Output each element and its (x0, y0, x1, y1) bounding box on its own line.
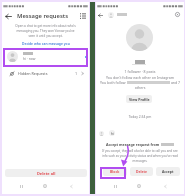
button[interactable]: Delete all (5, 169, 87, 177)
button[interactable]: Decide who can message you (2, 40, 89, 46)
staticText: If you accept, they will also be able to… (96, 149, 184, 163)
button[interactable]: Home (40, 181, 50, 191)
staticText: 1 (75, 71, 78, 76)
button[interactable]: Back (66, 181, 76, 191)
staticText: and 7 (170, 80, 181, 85)
staticText: hi · now (23, 56, 36, 61)
staticText: 1 follower · 8 posts (96, 69, 184, 74)
staticText: Open a chat to get more info about who's… (2, 24, 89, 38)
staticText: You both follow (100, 80, 127, 85)
button[interactable]: Sort (77, 10, 89, 22)
button[interactable]: Back (160, 181, 170, 191)
staticText: others (96, 85, 184, 90)
staticText: Message requests (17, 12, 68, 20)
button[interactable]: Back (96, 11, 104, 19)
button[interactable]: Back (2, 10, 14, 22)
staticText: View Profile (129, 97, 150, 102)
staticText: Block (110, 169, 120, 174)
button[interactable]: Hidden Requests (9, 68, 85, 79)
staticText: hi (111, 131, 114, 135)
staticText: Accept message request from (106, 142, 161, 147)
staticText: Today 2:34 pm (96, 114, 184, 118)
button[interactable]: Recent apps (16, 181, 26, 191)
button[interactable]: Home (134, 181, 144, 191)
staticText: Hidden Requests (18, 71, 48, 76)
button[interactable]: View Profile (126, 95, 152, 103)
staticText: Delete all (37, 171, 56, 176)
button[interactable]: hi · now (3, 48, 88, 67)
button[interactable]: Delete (130, 167, 153, 176)
staticText: Delete (136, 169, 148, 174)
staticText: Decide who can message you (22, 41, 70, 46)
button[interactable]: Block (103, 167, 127, 176)
button[interactable]: Accept (156, 167, 180, 176)
staticText: Accept (162, 169, 174, 174)
staticText: You don't follow each other on Instagram (96, 75, 184, 80)
button[interactable]: Info (173, 10, 182, 19)
button[interactable]: Recent apps (110, 181, 120, 191)
